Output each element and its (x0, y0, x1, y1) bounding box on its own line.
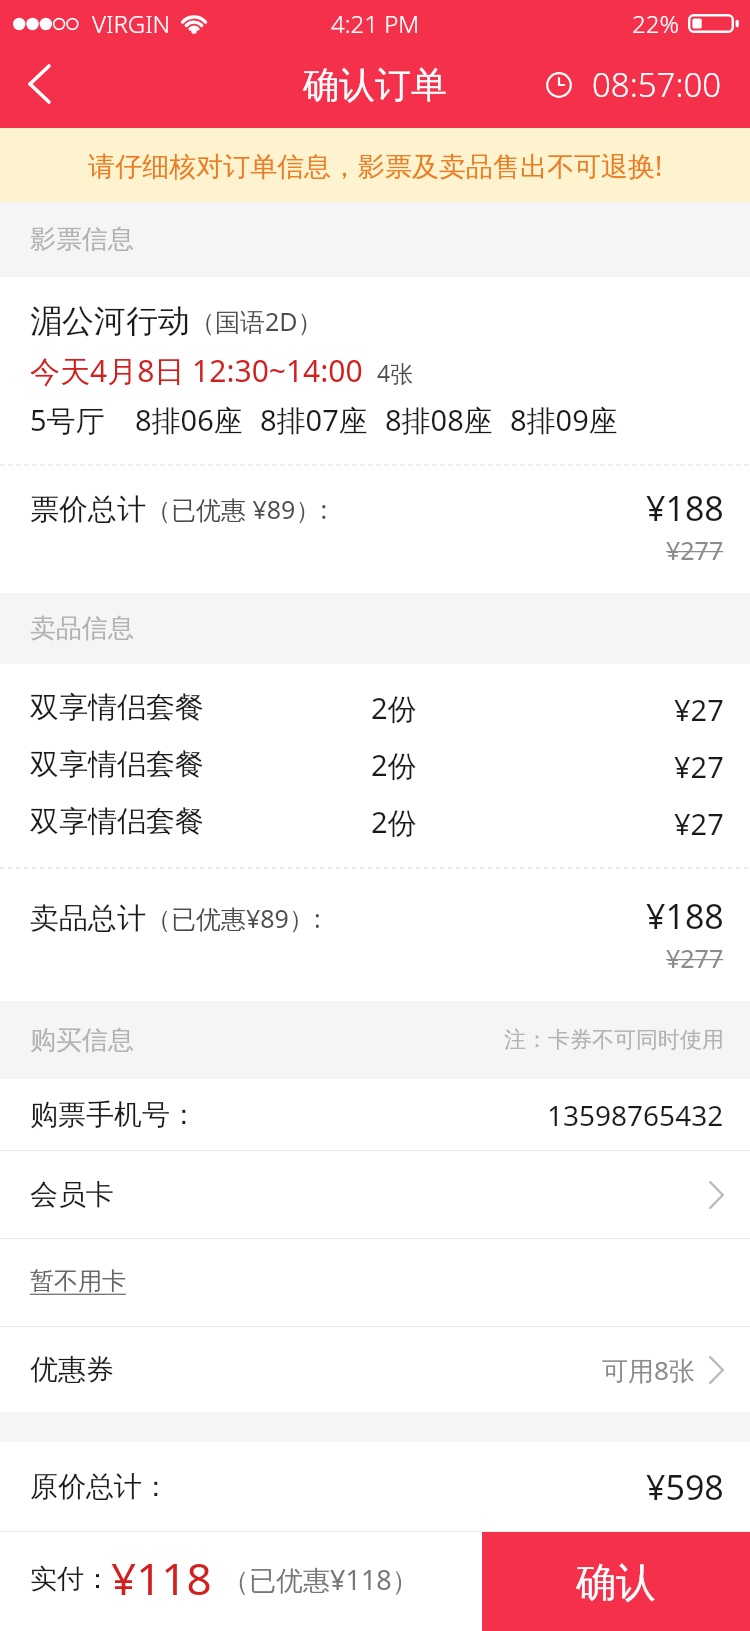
staticText: 原价总计： (30, 1469, 170, 1504)
staticText: 注：卡券不可同时使用 (504, 1026, 724, 1054)
staticText: 确认订单 (303, 62, 447, 107)
staticText: 可用8张 (602, 1352, 695, 1388)
staticText: 今天4月8日 12:30~14:00 (30, 350, 363, 391)
staticText: ¥598 (646, 1464, 724, 1510)
staticText: 4:21 PM (331, 7, 420, 40)
staticText: 8排08座 (385, 400, 493, 440)
staticText: ¥277 (666, 533, 724, 567)
staticText: VIRGIN (92, 7, 171, 40)
staticText: 2份 (371, 802, 417, 842)
button[interactable]: Back (0, 47, 78, 128)
staticText: 双享情侣套餐 (30, 746, 204, 783)
staticText: 双享情侣套餐 (30, 803, 204, 840)
staticText: ¥27 (674, 690, 724, 729)
staticText: （国语2D） (190, 304, 323, 338)
staticText: ¥118 (111, 1548, 212, 1608)
staticText: 购票手机号： (30, 1097, 198, 1132)
staticText: 请仔细核对订单信息，影票及卖品售出不可退换! (88, 147, 663, 184)
staticText: 暂不用卡 (30, 1266, 126, 1296)
staticText: 湄公河行动 (30, 301, 190, 341)
staticText: （已优惠¥89）: (146, 901, 321, 935)
staticText: 8排07座 (260, 400, 368, 440)
staticText: 购买信息 (30, 1024, 134, 1057)
staticText: 2份 (371, 745, 417, 785)
staticText: 票价总计 (30, 491, 146, 528)
staticText: 8排06座 (135, 400, 243, 440)
staticText: 确认 (576, 1557, 656, 1607)
staticText: ¥27 (674, 747, 724, 786)
staticText: ¥277 (666, 941, 724, 975)
staticText: 双享情侣套餐 (30, 689, 204, 726)
button[interactable]: 优惠券 (0, 1327, 750, 1412)
staticText: 8排09座 (510, 400, 618, 440)
button[interactable]: 暂不用卡 (0, 1239, 750, 1326)
staticText: （已优惠 ¥89）: (146, 492, 328, 526)
staticText: 13598765432 (547, 1096, 724, 1134)
staticText: 4张 (377, 357, 414, 388)
staticText: ¥188 (646, 893, 724, 939)
staticText: 会员卡 (30, 1177, 114, 1212)
staticText: 影票信息 (30, 223, 134, 256)
staticText: 卖品总计 (30, 900, 146, 937)
button[interactable]: 会员卡 (0, 1151, 750, 1238)
staticText: 22% (632, 7, 679, 40)
staticText: 08:57:00 (592, 62, 722, 107)
staticText: 卖品信息 (30, 612, 134, 645)
staticText: ¥188 (646, 485, 724, 531)
staticText: 2份 (371, 688, 417, 728)
button[interactable]: 确认 (482, 1532, 750, 1631)
staticText: 实付： (30, 1562, 111, 1596)
staticText: 优惠券 (30, 1352, 114, 1387)
staticText: ¥27 (674, 804, 724, 843)
staticText: 5号厅 (30, 400, 105, 440)
staticText: （已优惠¥118） (222, 1561, 419, 1598)
